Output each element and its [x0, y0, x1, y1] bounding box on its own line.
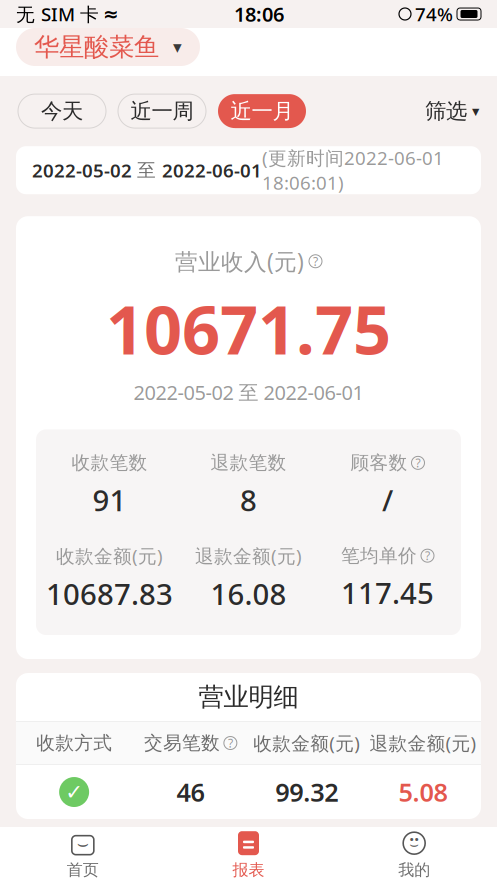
staticText: 收款金额(元) — [253, 731, 360, 755]
staticText: 退款金额(元) — [195, 543, 302, 568]
staticText: 91 — [92, 480, 126, 519]
staticText: 收款笔数 — [71, 451, 147, 474]
staticText: ? — [425, 548, 430, 564]
staticText: 2022-05-02 — [32, 158, 137, 183]
staticText: 117.45 — [341, 573, 434, 612]
staticText: 5.08 — [398, 775, 447, 809]
staticText: 8 — [240, 480, 257, 519]
staticText: 无 SIM 卡 — [16, 2, 99, 26]
staticText: 2022-05-02 至 2022-06-01 — [133, 379, 363, 405]
staticText: ·· — [409, 828, 419, 851]
staticText: 2022-06-01 — [162, 158, 262, 183]
staticText: ? — [228, 735, 233, 751]
staticText: 今天 — [41, 98, 83, 124]
staticText: 笔均单价 — [341, 544, 417, 567]
staticText: 18:06 — [234, 1, 284, 27]
button[interactable]: 筛选 — [425, 92, 479, 130]
button[interactable]: 近一周 — [118, 94, 206, 128]
button[interactable]: 我的 — [331, 828, 497, 882]
staticText: ≈ — [103, 3, 119, 25]
staticText: ▾ — [472, 103, 479, 119]
button[interactable]: 今天 — [18, 94, 106, 128]
button[interactable]: 华星酸菜鱼 — [16, 28, 200, 66]
staticText: 营业明细 — [198, 681, 298, 713]
button[interactable]: 报表 — [166, 828, 331, 882]
staticText: 99.32 — [275, 775, 338, 809]
staticText: 收款金额(元) — [56, 543, 163, 568]
button[interactable]: 首页 — [0, 828, 166, 882]
staticText: 退款笔数 — [210, 451, 286, 474]
staticText: 16.08 — [210, 574, 286, 613]
staticText: 筛选 — [425, 98, 467, 124]
staticText: 报表 — [232, 860, 264, 880]
staticText: 营业收入(元) — [175, 246, 304, 276]
staticText: 至 — [137, 159, 162, 182]
staticText: 74% — [415, 2, 453, 26]
button[interactable]: 近一月 — [218, 94, 306, 128]
staticText: 近一月 — [230, 98, 293, 124]
staticText: 10671.75 — [106, 284, 391, 373]
staticText: ▾ — [173, 37, 182, 57]
staticText: ✓ — [65, 780, 83, 804]
staticText: 收款方式 — [36, 732, 112, 754]
staticText: 近一周 — [130, 98, 193, 124]
staticText: 华星酸菜鱼 — [34, 31, 159, 62]
staticText: 顾客数 — [350, 451, 407, 474]
staticText: / — [382, 480, 393, 519]
staticText: (更新时间2022-06-01 18:06:01) — [262, 145, 444, 195]
staticText: ⌣ — [77, 835, 89, 853]
staticText: 10687.83 — [46, 574, 173, 613]
staticText: ? — [415, 455, 420, 471]
staticText: 交易笔数 — [144, 732, 220, 754]
staticText: ⌣ — [409, 837, 419, 852]
staticText: 46 — [176, 775, 204, 809]
staticText: 退款金额(元) — [369, 731, 476, 755]
staticText: 我的 — [398, 860, 430, 880]
staticText: 首页 — [67, 860, 99, 880]
staticText: ? — [313, 253, 318, 269]
